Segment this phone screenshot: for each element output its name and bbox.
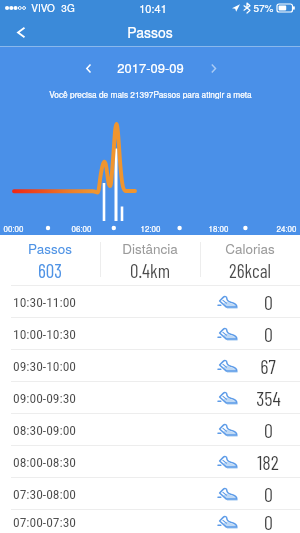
staticText: 0 bbox=[264, 290, 273, 314]
button[interactable]: 10:30-11:00 bbox=[0, 286, 300, 317]
button[interactable]: 09:00-09:30 bbox=[0, 382, 300, 413]
button[interactable]: 08:30-09:00 bbox=[0, 414, 300, 445]
staticText: 603 bbox=[38, 259, 62, 282]
staticText: Passos bbox=[28, 239, 72, 258]
button[interactable]: Passos bbox=[0, 235, 100, 285]
staticText: 0 bbox=[264, 322, 273, 346]
button[interactable]: 07:00-07:30 bbox=[0, 510, 300, 533]
staticText: 10:41 bbox=[139, 0, 167, 16]
staticText: VIVO bbox=[31, 1, 55, 15]
staticText: 0 bbox=[264, 510, 273, 533]
staticText: 182 bbox=[257, 450, 279, 474]
button[interactable]: Calorias bbox=[200, 235, 300, 285]
staticText: 57% bbox=[253, 1, 274, 15]
button[interactable]: 08:00-08:30 bbox=[0, 446, 300, 477]
button[interactable]: 07:30-08:00 bbox=[0, 478, 300, 509]
staticText: 0 bbox=[264, 482, 273, 506]
staticText: 12:00 bbox=[140, 223, 161, 234]
button[interactable]: 10:00-10:30 bbox=[0, 318, 300, 349]
staticText: 08:30-09:00 bbox=[13, 422, 76, 438]
staticText: Calorias bbox=[225, 239, 275, 258]
staticText: Passos bbox=[127, 22, 173, 42]
staticText: 07:30-08:00 bbox=[13, 486, 76, 502]
staticText: 18:00 bbox=[208, 223, 229, 234]
button[interactable]: Next day bbox=[198, 58, 228, 78]
staticText: 10:00-10:30 bbox=[13, 326, 76, 342]
staticText: 354 bbox=[256, 386, 281, 410]
staticText: 0.4km bbox=[130, 259, 170, 282]
button[interactable]: Previous day bbox=[73, 58, 103, 78]
staticText: 3G bbox=[61, 1, 75, 15]
button[interactable]: Back bbox=[0, 18, 42, 46]
staticText: 67 bbox=[260, 354, 276, 378]
staticText: 2017-09-09 bbox=[117, 58, 184, 77]
staticText: Você precisa de mais 21397Passos para at… bbox=[49, 88, 252, 99]
staticText: 24:00 bbox=[276, 223, 297, 234]
staticText: 10:30-11:00 bbox=[13, 294, 76, 310]
staticText: 08:00-08:30 bbox=[13, 454, 76, 470]
button[interactable]: Distância bbox=[100, 235, 200, 285]
staticText: 09:00-09:30 bbox=[13, 390, 76, 406]
staticText: 06:00 bbox=[71, 223, 92, 234]
button[interactable]: 09:30-10:00 bbox=[0, 350, 300, 381]
staticText: 09:30-10:00 bbox=[13, 358, 76, 374]
staticText: 0 bbox=[264, 418, 273, 442]
staticText: Distância bbox=[122, 239, 178, 258]
staticText: 00:00 bbox=[3, 223, 24, 234]
staticText: 07:00-07:30 bbox=[13, 514, 76, 530]
staticText: 26kcal bbox=[229, 259, 271, 282]
